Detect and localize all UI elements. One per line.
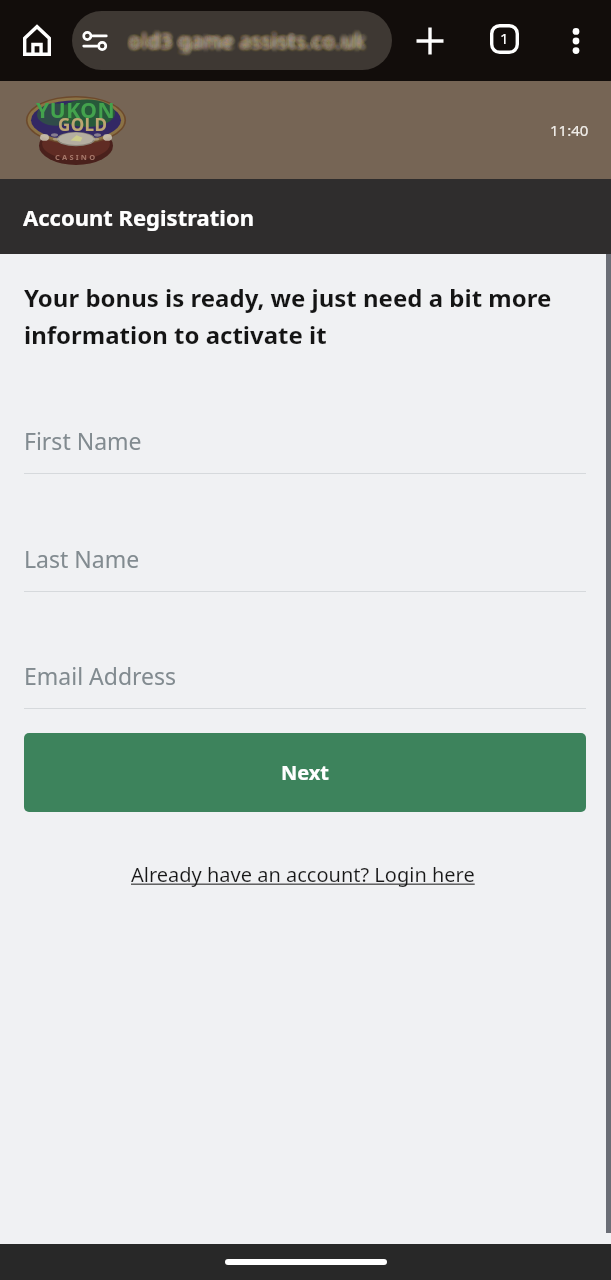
- staticText: old3 game assists.co.uk: [123, 27, 360, 51]
- staticText: old3 game assists.co.uk: [132, 30, 369, 54]
- staticText: old3 game assists.co.uk: [127, 25, 364, 49]
- staticText: old3 game assists.co.uk: [135, 29, 372, 53]
- staticText: old3 game assists.co.uk: [125, 32, 362, 56]
- staticText: old3 game assists.co.uk: [126, 24, 363, 48]
- staticText: old3 game assists.co.uk: [130, 28, 367, 52]
- staticText: old3 game assists.co.uk: [134, 31, 371, 55]
- staticText: old3 game assists.co.uk: [126, 32, 363, 56]
- button[interactable]: Search or type web address: [72, 11, 392, 70]
- button[interactable]: Next: [24, 733, 586, 812]
- staticText: old3 game assists.co.uk: [132, 26, 369, 50]
- staticText: old3 game assists.co.uk: [127, 30, 364, 54]
- staticText: old3 game assists.co.uk: [135, 29, 372, 53]
- staticText: old3 game assists.co.uk: [130, 30, 367, 54]
- staticText: old3 game assists.co.uk: [134, 28, 371, 52]
- staticText: old3 game assists.co.uk: [133, 31, 370, 55]
- staticText: old3 game assists.co.uk: [128, 31, 365, 55]
- staticText: old3 game assists.co.uk: [132, 26, 369, 50]
- staticText: old3 game assists.co.uk: [131, 24, 368, 48]
- staticText: old3 game assists.co.uk: [125, 24, 362, 48]
- staticText: old3 game assists.co.uk: [133, 31, 370, 55]
- button[interactable]: Email Address: [24, 660, 586, 709]
- staticText: old3 game assists.co.uk: [126, 32, 363, 56]
- staticText: old3 game assists.co.uk: [125, 26, 362, 50]
- staticText: old3 game assists.co.uk: [125, 29, 362, 53]
- staticText: old3 game assists.co.uk: [130, 28, 367, 52]
- staticText: old3 game assists.co.uk: [127, 31, 364, 55]
- staticText: old3 game assists.co.uk: [132, 27, 369, 51]
- button[interactable]: Home: [11, 15, 62, 66]
- staticText: old3 game assists.co.uk: [128, 27, 365, 51]
- staticText: old3 game assists.co.uk: [125, 33, 362, 57]
- staticText: old3 game assists.co.uk: [131, 29, 368, 53]
- staticText: old3 game assists.co.uk: [128, 29, 365, 53]
- staticText: old3 game assists.co.uk: [130, 32, 367, 56]
- staticText: old3 game assists.co.uk: [125, 32, 362, 56]
- staticText: old3 game assists.co.uk: [135, 31, 372, 55]
- staticText: old3 game assists.co.uk: [135, 27, 372, 51]
- staticText: old3 game assists.co.uk: [131, 24, 368, 48]
- staticText: old3 game assists.co.uk: [127, 24, 364, 48]
- staticText: old3 game assists.co.uk: [131, 24, 368, 48]
- staticText: old3 game assists.co.uk: [128, 29, 365, 53]
- staticText: old3 game assists.co.uk: [125, 30, 362, 54]
- staticText: old3 game assists.co.uk: [129, 24, 366, 48]
- staticText: old3 game assists.co.uk: [131, 33, 368, 57]
- staticText: old3 game assists.co.uk: [133, 29, 370, 53]
- staticText: old3 game assists.co.uk: [127, 26, 364, 50]
- button[interactable]: First Name: [24, 425, 586, 474]
- staticText: old3 game assists.co.uk: [130, 22, 367, 46]
- staticText: old3 game assists.co.uk: [129, 31, 366, 55]
- staticText: old3 game assists.co.uk: [125, 24, 362, 48]
- staticText: old3 game assists.co.uk: [129, 23, 366, 47]
- staticText: old3 game assists.co.uk: [129, 23, 366, 47]
- staticText: old3 game assists.co.uk: [131, 24, 368, 48]
- staticText: old3 game assists.co.uk: [130, 28, 367, 52]
- staticText: old3 game assists.co.uk: [131, 27, 368, 51]
- staticText: old3 game assists.co.uk: [126, 30, 363, 54]
- button[interactable]: Already have an account? Login here: [131, 861, 475, 888]
- staticText: old3 game assists.co.uk: [123, 28, 360, 52]
- staticText: old3 game assists.co.uk: [131, 32, 368, 56]
- staticText: old3 game assists.co.uk: [130, 31, 367, 55]
- staticText: old3 game assists.co.uk: [124, 27, 361, 51]
- staticText: old3 game assists.co.uk: [132, 27, 369, 51]
- staticText: old3 game assists.co.uk: [125, 25, 362, 49]
- staticText: old3 game assists.co.uk: [132, 28, 369, 52]
- staticText: old3 game assists.co.uk: [127, 31, 364, 55]
- button[interactable]: Last Name: [24, 543, 586, 592]
- staticText: old3 game assists.co.uk: [131, 30, 368, 54]
- button[interactable]: Tabs: [479, 14, 529, 64]
- staticText: old3 game assists.co.uk: [133, 25, 370, 49]
- staticText: old3 game assists.co.uk: [132, 28, 369, 52]
- staticText: old3 game assists.co.uk: [133, 28, 370, 52]
- staticText: old3 game assists.co.uk: [129, 30, 366, 54]
- staticText: old3 game assists.co.uk: [129, 31, 366, 55]
- button[interactable]: New tab: [405, 16, 455, 66]
- staticText: old3 game assists.co.uk: [134, 25, 371, 49]
- staticText: old3 game assists.co.uk: [129, 30, 366, 54]
- staticText: old3 game assists.co.uk: [130, 25, 367, 49]
- staticText: old3 game assists.co.uk: [130, 26, 367, 50]
- staticText: old3 game assists.co.uk: [133, 31, 370, 55]
- staticText: old3 game assists.co.uk: [129, 32, 366, 56]
- staticText: old3 game assists.co.uk: [134, 28, 371, 52]
- staticText: old3 game assists.co.uk: [133, 26, 370, 50]
- staticText: old3 game assists.co.uk: [124, 28, 361, 52]
- staticText: old3 game assists.co.uk: [129, 24, 366, 48]
- staticText: old3 game assists.co.uk: [128, 25, 365, 49]
- staticText: old3 game assists.co.uk: [132, 23, 369, 47]
- staticText: old3 game assists.co.uk: [133, 32, 370, 56]
- staticText: old3 game assists.co.uk: [129, 33, 366, 57]
- staticText: old3 game assists.co.uk: [134, 30, 371, 54]
- staticText: YUKON: [36, 96, 116, 125]
- staticText: old3 game assists.co.uk: [127, 31, 364, 55]
- staticText: old3 game assists.co.uk: [135, 30, 372, 54]
- staticText: old3 game assists.co.uk: [125, 32, 362, 56]
- staticText: old3 game assists.co.uk: [133, 33, 370, 57]
- staticText: old3 game assists.co.uk: [125, 27, 362, 51]
- staticText: old3 game assists.co.uk: [127, 29, 364, 53]
- staticText: old3 game assists.co.uk: [131, 27, 368, 51]
- staticText: old3 game assists.co.uk: [127, 24, 364, 48]
- button[interactable]: More options: [551, 16, 601, 66]
